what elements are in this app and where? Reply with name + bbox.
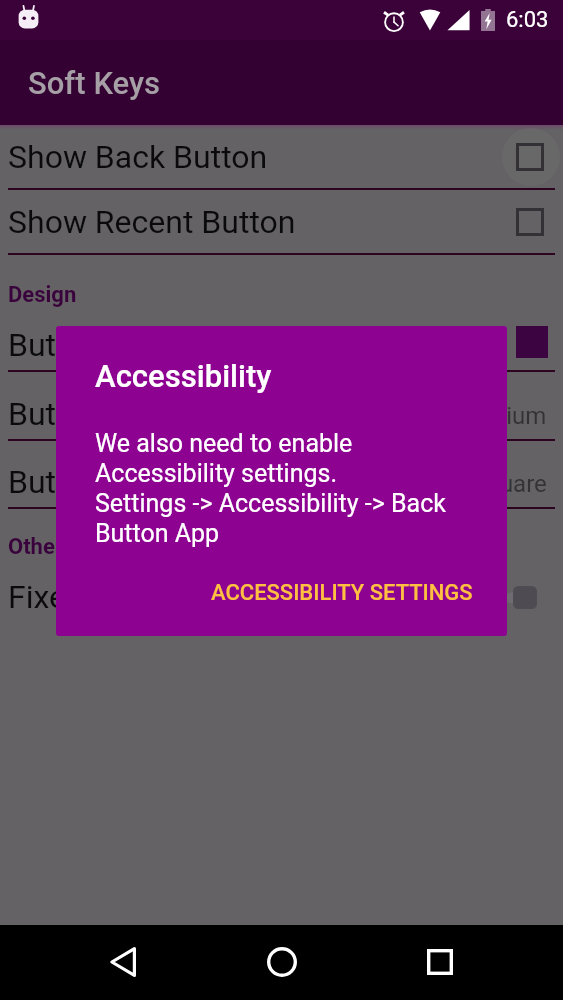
- button[interactable]: Back: [87, 926, 159, 998]
- staticText: Button Color: [8, 326, 187, 364]
- staticText: Show Back Button: [8, 138, 268, 176]
- button[interactable]: Button Shape: [0, 441, 563, 507]
- staticText: ACCESSIBILITY SETTINGS: [211, 580, 473, 606]
- staticText: Other: [8, 534, 63, 560]
- staticText: Accessibility: [95, 358, 272, 394]
- button[interactable]: Fixed Position: [0, 558, 563, 624]
- staticText: Show Recent Button: [8, 203, 296, 241]
- button[interactable]: Show Back Button: [0, 125, 563, 188]
- staticText: Button Shape: [8, 463, 200, 501]
- button[interactable]: Show Recent Button: [0, 190, 563, 253]
- button[interactable]: Recent apps: [404, 926, 476, 998]
- button[interactable]: Button Size: [0, 372, 563, 439]
- staticText: Soft Keys: [28, 65, 161, 101]
- button[interactable]: Button Color: [0, 304, 563, 370]
- staticText: We also need to enable Accessibility set…: [95, 429, 446, 548]
- staticText: Medium: [459, 402, 547, 430]
- staticText: Square: [472, 470, 547, 498]
- button[interactable]: ACCESSIBILITY SETTINGS: [197, 571, 487, 615]
- staticText: Fixed Position: [8, 578, 209, 616]
- staticText: Button Size: [8, 395, 170, 433]
- staticText: 6:03: [506, 7, 549, 33]
- button[interactable]: Home: [246, 926, 318, 998]
- staticText: Design: [8, 282, 77, 308]
